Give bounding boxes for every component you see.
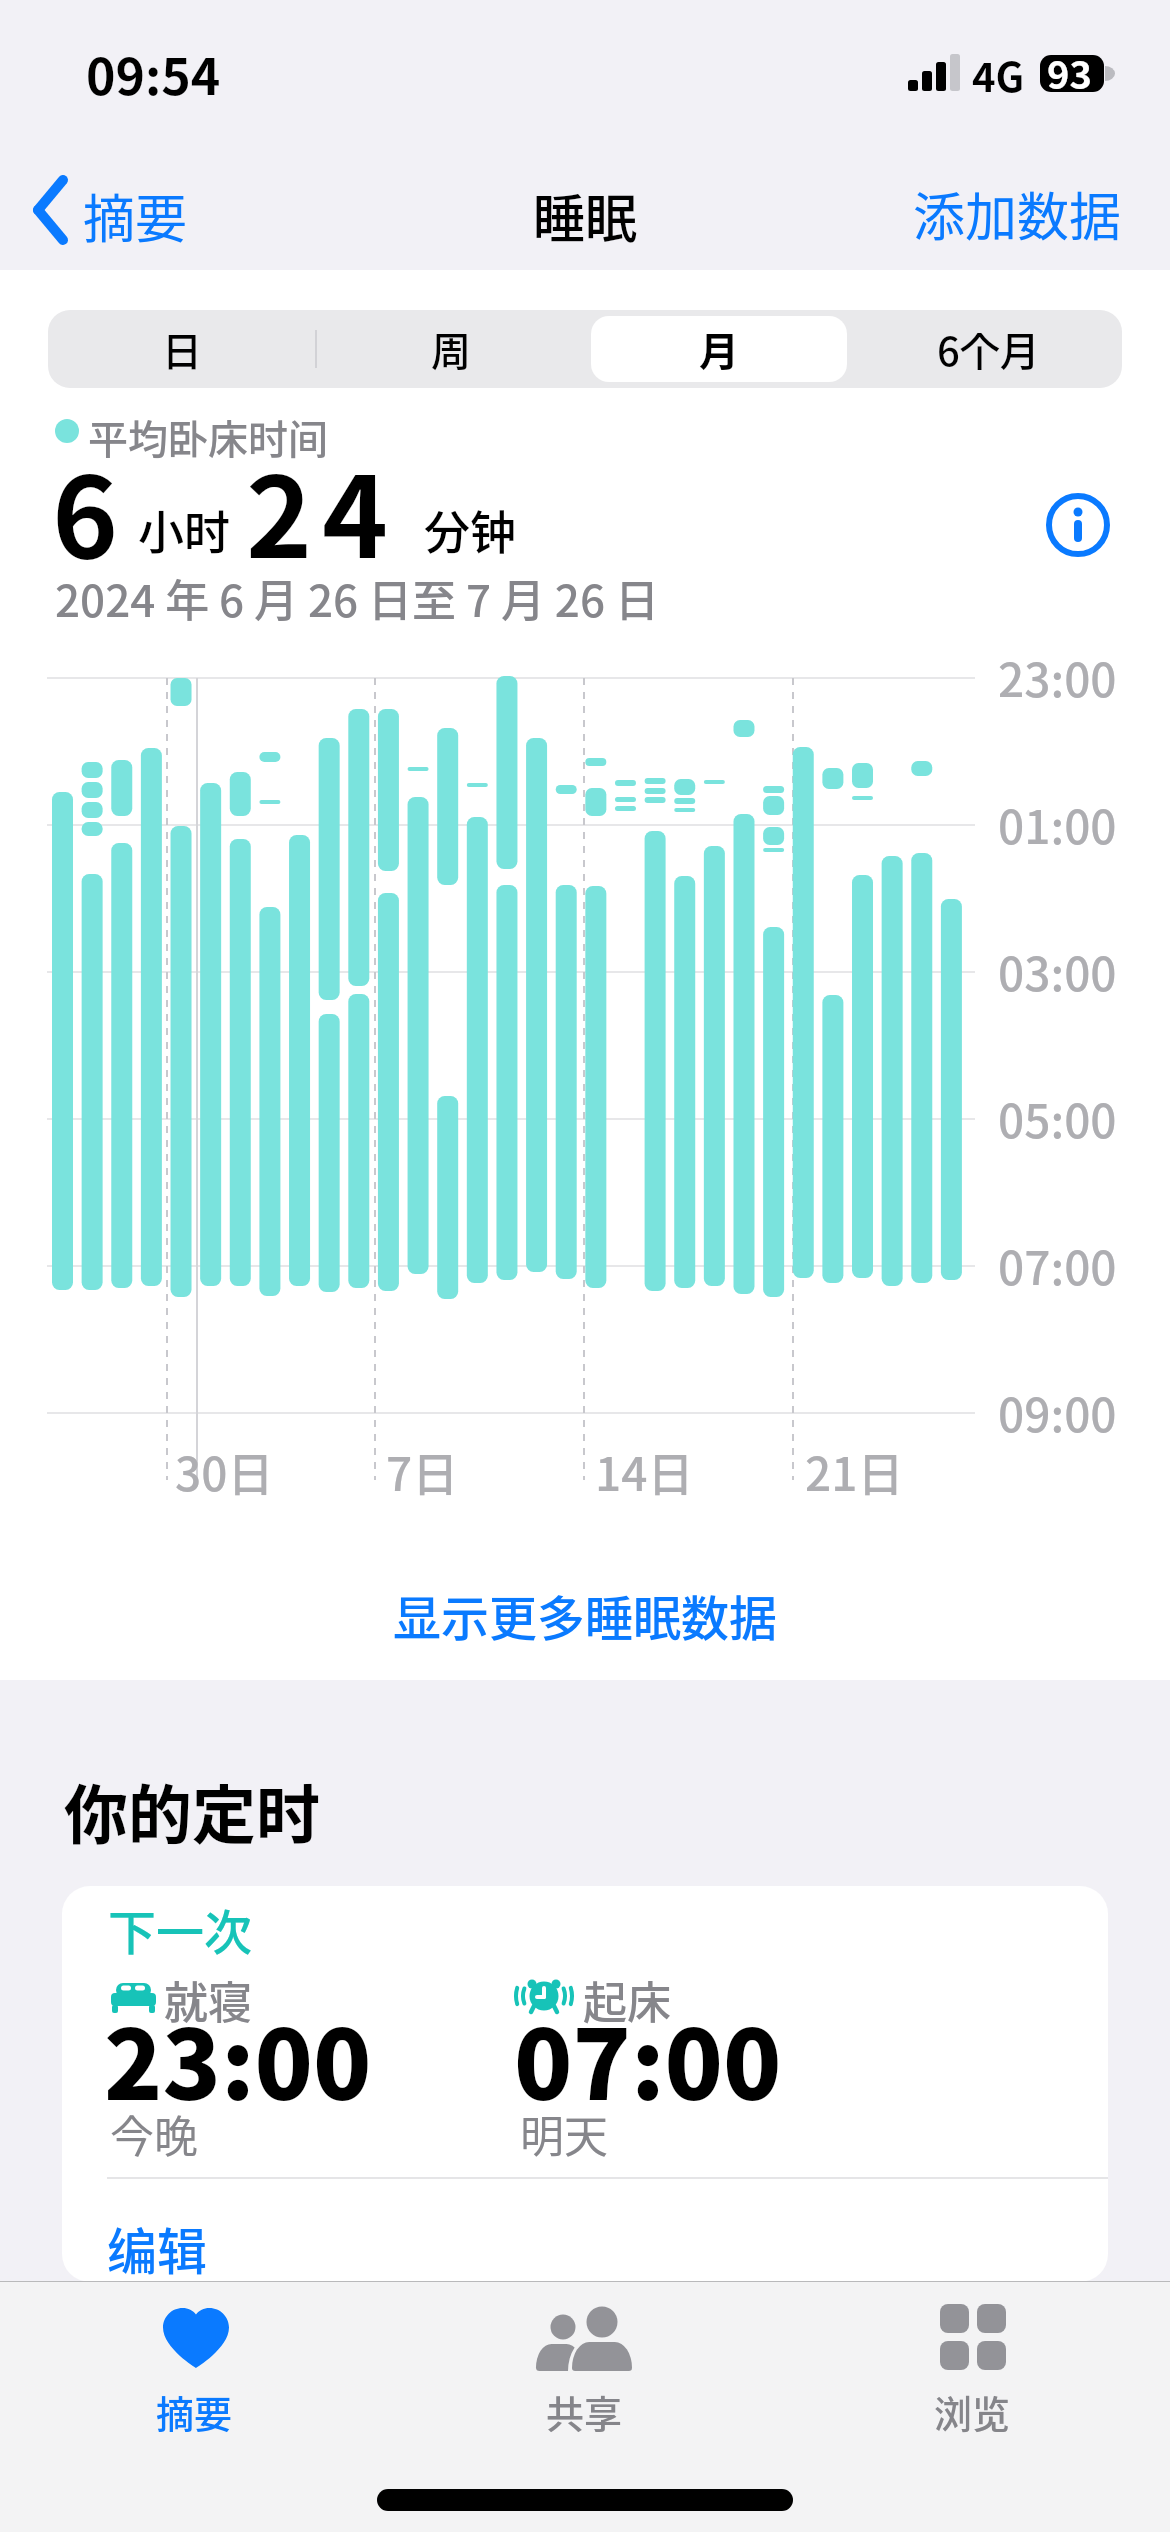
- button[interactable]: 摘要: [110, 2290, 280, 2450]
- staticText: 日: [162, 320, 202, 378]
- button[interactable]: 共享: [500, 2290, 670, 2450]
- staticText: 30日: [175, 1438, 274, 1505]
- staticText: 7日: [386, 1438, 459, 1505]
- staticText: 23:00: [104, 1989, 372, 2128]
- staticText: 起床: [583, 1968, 671, 2032]
- staticText: 今晚: [110, 2102, 198, 2166]
- staticText: 03:00: [998, 938, 1117, 1005]
- staticText: 平均卧床时间: [88, 408, 328, 466]
- staticText: 浏览: [934, 2384, 1011, 2439]
- button[interactable]: 编辑: [107, 2206, 307, 2276]
- staticText: 你的定时: [64, 1764, 320, 1857]
- staticText: 09:54: [86, 37, 221, 109]
- staticText: 周: [431, 320, 471, 378]
- staticText: 睡眠: [533, 178, 638, 253]
- button[interactable]: 浏览: [888, 2290, 1058, 2450]
- staticText: 分钟: [424, 496, 516, 563]
- staticText: 编辑: [107, 2212, 207, 2282]
- button[interactable]: 月: [585, 310, 853, 388]
- staticText: 2024 年 6 月 26 日至 7 月 26 日: [55, 566, 659, 630]
- staticText: 21日: [805, 1438, 904, 1505]
- staticText: 07:00: [998, 1232, 1117, 1299]
- staticText: 05:00: [998, 1085, 1117, 1152]
- staticText: 93: [1047, 45, 1092, 100]
- staticText: 月: [699, 320, 739, 378]
- staticText: 14日: [595, 1438, 694, 1505]
- staticText: 下一次: [108, 1894, 253, 1964]
- staticText: 07:00: [514, 1989, 782, 2128]
- button[interactable]: 日: [48, 310, 316, 388]
- staticText: 小时: [138, 496, 230, 563]
- staticText: 共享: [546, 2384, 623, 2439]
- button[interactable]: 添加数据: [905, 172, 1135, 242]
- staticText: 明天: [520, 2102, 608, 2166]
- staticText: 09:00: [998, 1379, 1117, 1446]
- staticText: 显示更多睡眠数据: [393, 1580, 778, 1650]
- staticText: 添加数据: [913, 176, 1122, 246]
- staticText: 24: [246, 428, 399, 590]
- button[interactable]: 摘要: [25, 170, 215, 250]
- staticText: 6个月: [937, 320, 1040, 378]
- staticText: 23:00: [998, 644, 1117, 711]
- staticText: 01:00: [998, 791, 1117, 858]
- staticText: 摘要: [83, 178, 188, 253]
- button[interactable]: 6个月: [854, 310, 1122, 388]
- staticText: 摘要: [156, 2384, 233, 2439]
- button[interactable]: 周: [317, 310, 585, 388]
- staticText: 就寝: [164, 1968, 252, 2032]
- button[interactable]: [1045, 492, 1111, 558]
- staticText: 4G: [972, 46, 1025, 104]
- staticText: 6: [52, 428, 119, 590]
- button[interactable]: 显示更多睡眠数据: [0, 1580, 1170, 1650]
